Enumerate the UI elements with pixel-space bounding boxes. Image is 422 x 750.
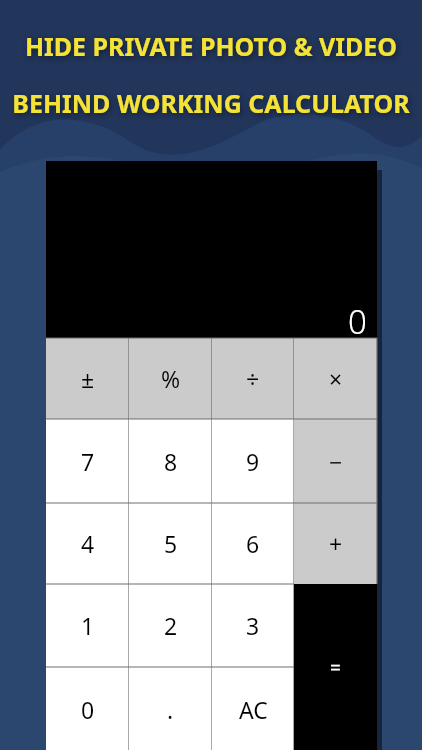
button[interactable]: 8 — [129, 419, 212, 503]
staticText: 3 — [246, 610, 260, 641]
staticText: 7 — [81, 446, 95, 477]
button[interactable]: 1 — [46, 584, 129, 667]
button[interactable]: 9 — [212, 419, 294, 503]
staticText: % — [161, 363, 181, 394]
staticText: 9 — [246, 446, 260, 477]
staticText: BEHIND WORKING CALCULATOR — [0, 86, 422, 120]
staticText: HIDE PRIVATE PHOTO & VIDEO — [0, 29, 422, 63]
button[interactable]: = — [294, 584, 377, 750]
staticText: 5 — [164, 528, 178, 559]
button[interactable]: − — [294, 419, 377, 503]
staticText: 0 — [348, 299, 367, 344]
staticText: ÷ — [246, 363, 260, 394]
button[interactable]: 3 — [212, 584, 294, 667]
staticText: 8 — [164, 446, 178, 477]
button[interactable]: % — [129, 338, 212, 419]
staticText: . — [167, 694, 174, 725]
button[interactable]: 5 — [129, 503, 212, 584]
staticText: + — [329, 528, 343, 559]
button[interactable]: 2 — [129, 584, 212, 667]
button[interactable]: ÷ — [212, 338, 294, 419]
staticText: × — [329, 363, 343, 394]
staticText: = — [330, 655, 341, 681]
button[interactable]: AC — [212, 667, 294, 750]
staticText: 2 — [164, 610, 178, 641]
staticText: AC — [239, 694, 268, 725]
staticText: ± — [81, 363, 95, 394]
button[interactable]: 7 — [46, 419, 129, 503]
button[interactable]: ± — [46, 338, 129, 419]
staticText: 0 — [81, 694, 95, 725]
staticText: 1 — [81, 610, 95, 641]
staticText: − — [329, 446, 343, 477]
staticText: 6 — [246, 528, 260, 559]
button[interactable]: 6 — [212, 503, 294, 584]
button[interactable]: + — [294, 503, 377, 584]
button[interactable]: × — [294, 338, 377, 419]
button[interactable]: 4 — [46, 503, 129, 584]
button[interactable]: 0 — [46, 667, 129, 750]
staticText: 4 — [81, 528, 95, 559]
button[interactable]: . — [129, 667, 212, 750]
